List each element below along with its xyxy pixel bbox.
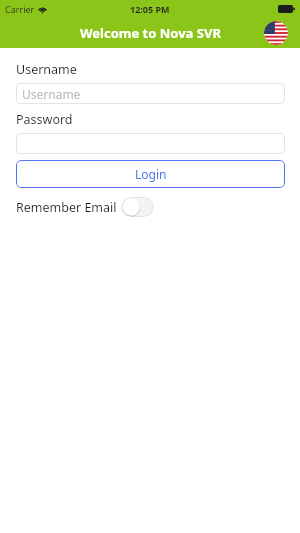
staticText: Welcome to Nova SVR: [80, 24, 221, 42]
button[interactable]: [16, 133, 285, 154]
staticText: Carrier: [5, 3, 35, 15]
button[interactable]: Select language: [264, 21, 288, 45]
button[interactable]: Login: [16, 160, 285, 188]
staticText: 12:05 PM: [130, 3, 170, 15]
staticText: Username: [16, 61, 77, 78]
button[interactable]: Remember Email toggle: [121, 197, 154, 217]
staticText: Login: [135, 166, 167, 182]
button[interactable]: Username: [16, 83, 285, 104]
staticText: Password: [16, 111, 73, 128]
staticText: Remember Email: [16, 199, 117, 216]
staticText: Username: [22, 86, 81, 102]
